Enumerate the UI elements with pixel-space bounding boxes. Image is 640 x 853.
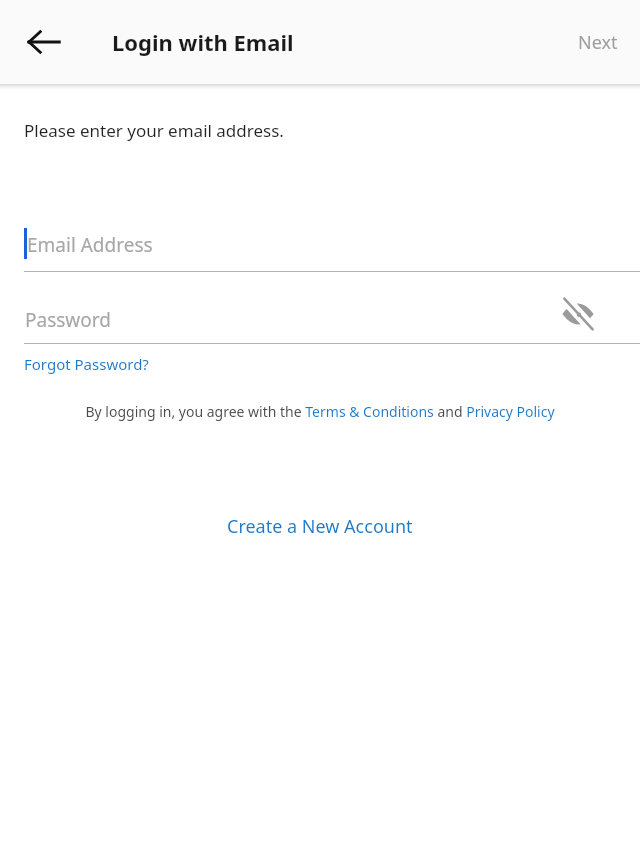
button[interactable]: Email Address <box>0 206 640 272</box>
staticText: Next <box>578 30 618 55</box>
staticText: Email Address <box>27 232 153 258</box>
staticText: Create a New Account <box>227 514 413 539</box>
button[interactable]: Create a New Account <box>0 506 640 546</box>
staticText: Login with Email <box>112 27 294 57</box>
staticText: By logging in, you agree with the Terms … <box>85 402 555 421</box>
button[interactable]: By logging in, you agree with the Terms … <box>0 402 640 421</box>
button[interactable]: Show password <box>552 288 604 340</box>
staticText: Password <box>25 307 111 333</box>
button[interactable]: Forgot Password? <box>24 354 149 374</box>
button[interactable]: Back <box>0 0 88 84</box>
button[interactable] <box>0 282 640 340</box>
staticText: Please enter your email address. <box>24 119 284 142</box>
staticText: Forgot Password? <box>24 354 149 374</box>
button[interactable]: Next <box>556 0 640 84</box>
